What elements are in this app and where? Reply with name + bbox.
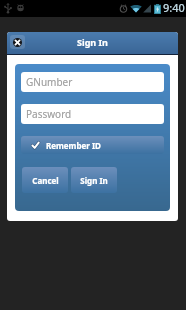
button[interactable]: Cancel	[22, 167, 68, 193]
staticText: Password	[26, 107, 72, 121]
staticText: Sign In	[80, 175, 108, 186]
button[interactable]: GNumber	[21, 72, 164, 92]
staticText: Remember ID	[46, 140, 101, 151]
button[interactable]: Close	[10, 35, 25, 49]
staticText: Sign In	[77, 36, 108, 48]
button[interactable]: Remember ID	[21, 136, 164, 154]
button[interactable]: Sign In	[71, 167, 117, 193]
button[interactable]: Password	[21, 104, 164, 124]
staticText: Cancel	[32, 175, 59, 186]
staticText: 9:40	[163, 0, 185, 15]
staticText: GNumber	[26, 75, 73, 89]
